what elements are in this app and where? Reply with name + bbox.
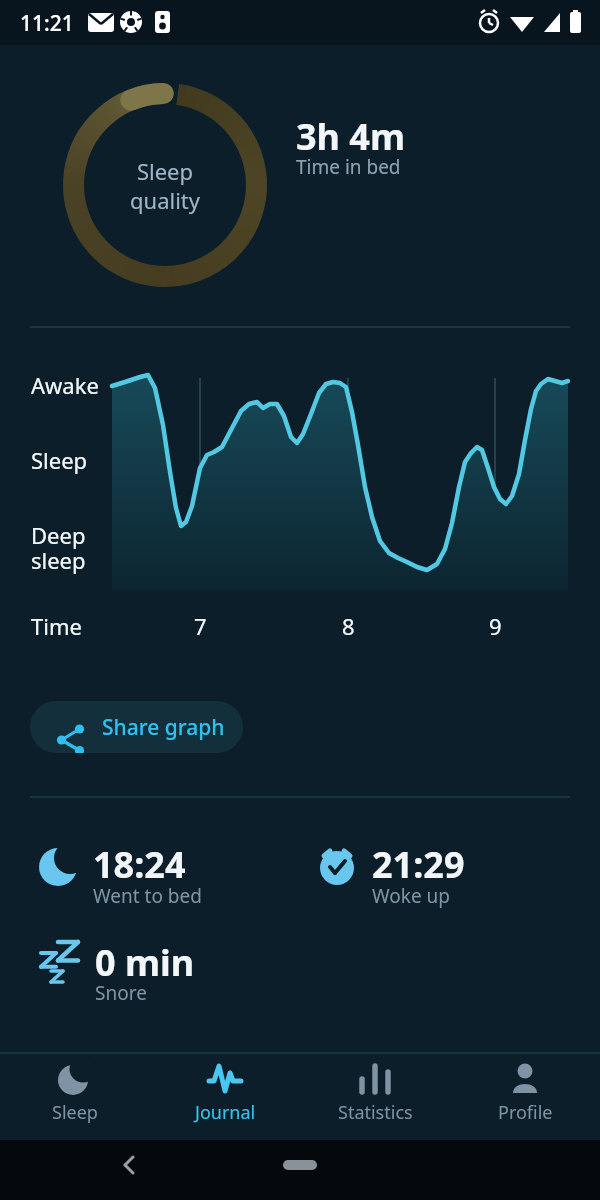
staticText: 11:21 — [20, 9, 74, 38]
staticText: 3h 4m — [296, 112, 406, 161]
staticText: Sleep — [31, 445, 88, 475]
staticText: Woke up — [372, 883, 451, 909]
button[interactable]: Profile — [450, 1054, 600, 1140]
button[interactable] — [283, 1160, 317, 1170]
staticText: 7 — [194, 611, 207, 641]
staticText: Snore — [95, 980, 147, 1006]
staticText: Statistics — [338, 1100, 413, 1125]
staticText: Share graph — [102, 713, 225, 742]
staticText: Sleep — [52, 1100, 98, 1125]
button[interactable]: Statistics — [300, 1054, 450, 1140]
staticText: Went to bed — [93, 883, 202, 909]
staticText: Journal — [195, 1100, 256, 1125]
staticText: Profile — [498, 1100, 553, 1125]
staticText: Awake — [31, 370, 99, 400]
button[interactable]: Share graph — [30, 701, 243, 753]
staticText: Time — [31, 611, 82, 641]
button[interactable]: Sleep — [0, 1054, 150, 1140]
staticText: 9 — [489, 611, 502, 641]
staticText: 21:29 — [372, 840, 465, 889]
staticText: 8 — [342, 611, 355, 641]
staticText: Time in bed — [296, 154, 401, 180]
staticText: Deep sleep — [31, 520, 86, 576]
staticText: 18:24 — [93, 840, 186, 889]
button[interactable]: Journal — [150, 1054, 300, 1140]
staticText: Sleep quality — [130, 156, 200, 215]
staticText: 0 min — [95, 938, 195, 987]
